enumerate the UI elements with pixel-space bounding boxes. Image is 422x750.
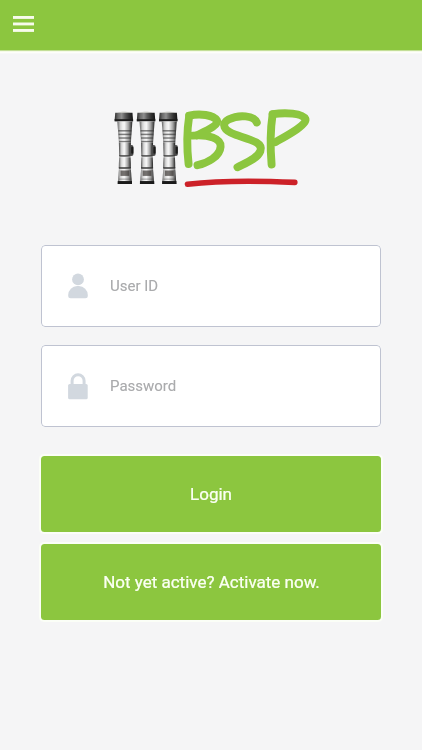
staticText: Login [190, 484, 232, 504]
button[interactable]: Menu [4, 5, 42, 43]
button[interactable]: Not yet active? Activate now. [41, 544, 381, 620]
staticText: User ID [110, 277, 159, 295]
staticText: Not yet active? Activate now. [103, 572, 320, 592]
button[interactable]: Login [41, 456, 381, 532]
staticText: Password [110, 377, 177, 395]
button[interactable]: User ID [41, 245, 381, 327]
button[interactable]: Password [41, 345, 381, 427]
